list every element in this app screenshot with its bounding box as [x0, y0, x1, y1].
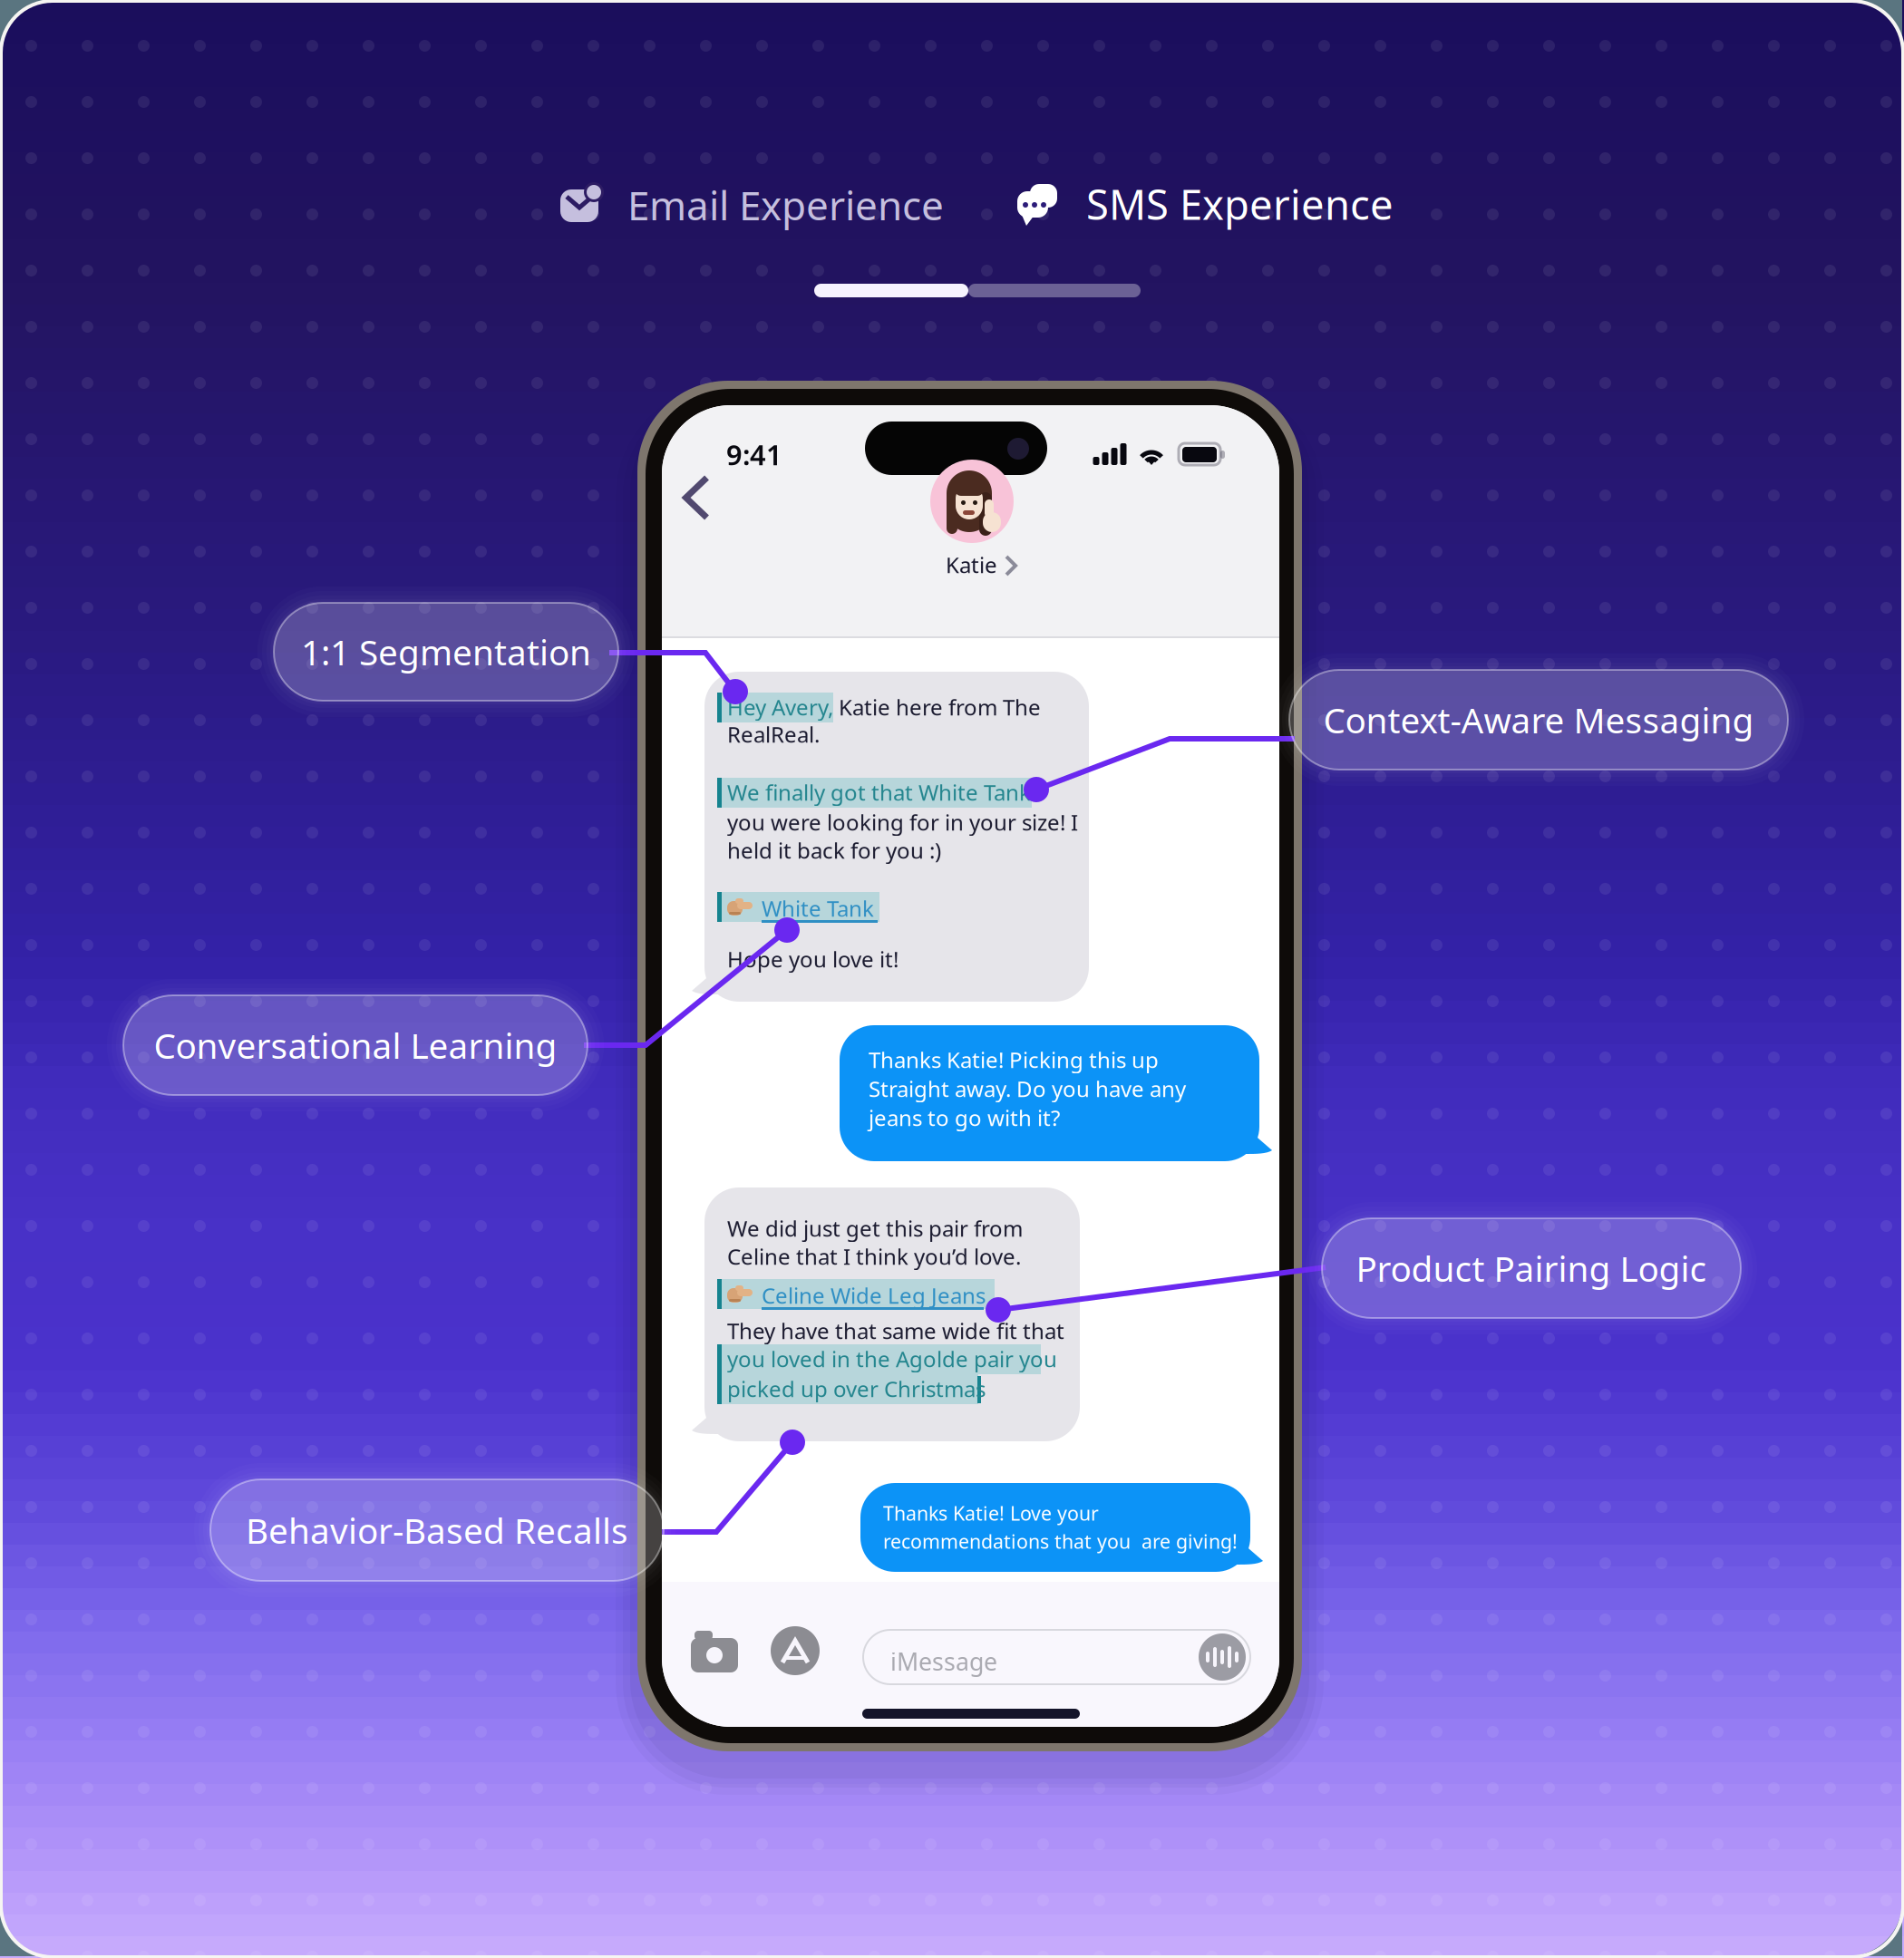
staticText: 1:1 Segmentation — [301, 628, 591, 675]
staticText: you were looking for in your size! I — [727, 808, 1078, 837]
staticText: Context-Aware Messaging — [1323, 696, 1754, 743]
staticText: RealReal. — [727, 720, 820, 749]
button[interactable]: Apps — [771, 1626, 820, 1675]
staticText: Thanks Katie! Picking this up — [869, 1045, 1159, 1074]
button[interactable]: Product Pairing Logic — [1307, 1203, 1756, 1333]
staticText: Celine Wide Leg Jeans — [762, 1281, 986, 1310]
staticText: We finally got that White Tank — [727, 778, 1031, 807]
staticText: Email Experience — [627, 178, 944, 231]
staticText: jeans to go with it? — [869, 1103, 1060, 1132]
staticText: Celine that I think you’d love. — [727, 1242, 1021, 1271]
button[interactable]: Behavior-Based Recalls — [195, 1464, 679, 1596]
staticText: Hey Avery, — [727, 693, 833, 721]
staticText: held it back for you :) — [727, 836, 941, 865]
button[interactable]: Conversational Learning — [108, 980, 603, 1110]
button[interactable]: Context-Aware Messaging — [1274, 654, 1803, 785]
button[interactable]: Email Experience — [560, 178, 950, 232]
button[interactable]: Katie — [854, 460, 1090, 586]
staticText: Katie here from The — [833, 693, 1041, 721]
button[interactable]: 1:1 Segmentation — [258, 587, 634, 716]
staticText: Product Pairing Logic — [1356, 1245, 1707, 1291]
staticText: 9:41 — [726, 436, 782, 473]
staticText: They have that same wide fit that — [727, 1316, 1064, 1345]
staticText: Behavior-Based Recalls — [246, 1507, 628, 1553]
staticText: Katie — [946, 550, 997, 579]
staticText: iMessage — [890, 1645, 997, 1677]
staticText: Conversational Learning — [154, 1022, 557, 1068]
button[interactable]: Back — [669, 469, 724, 527]
staticText: We did just get this pair from — [727, 1214, 1023, 1243]
staticText: recommendations that you are giving! — [883, 1528, 1238, 1554]
staticText: Straight away. Do you have any — [869, 1074, 1186, 1103]
staticText: Hope you love it! — [727, 945, 899, 973]
button[interactable]: SMS Experience — [1017, 177, 1398, 231]
staticText: you loved in the Agolde pair you — [727, 1344, 1057, 1373]
staticText: picked up over Christmas — [727, 1374, 986, 1403]
button[interactable]: Camera — [691, 1629, 740, 1674]
staticText: SMS Experience — [1086, 177, 1394, 231]
button[interactable]: iMessage — [863, 1630, 1250, 1684]
staticText: Thanks Katie! Love your — [883, 1500, 1099, 1526]
staticText: White Tank — [762, 894, 874, 923]
